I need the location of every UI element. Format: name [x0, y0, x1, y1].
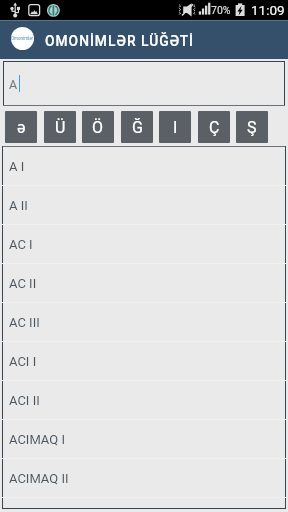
button[interactable]: Ö — [82, 111, 114, 143]
staticText: A II — [9, 198, 28, 213]
button[interactable]: ACI II — [2, 381, 286, 419]
button[interactable]: ACI I — [2, 342, 286, 380]
button[interactable]: A II — [2, 186, 286, 224]
staticText: 70% — [211, 4, 231, 16]
button[interactable]: Ş — [236, 111, 268, 143]
button[interactable]: ACIMAQ I — [2, 420, 286, 458]
other: App icon — [11, 27, 34, 50]
button[interactable]: ACIMAQ II — [2, 459, 286, 497]
staticText: AC III — [9, 315, 40, 330]
button[interactable]: A I — [2, 147, 286, 185]
button[interactable]: Ç — [198, 111, 230, 143]
button[interactable]: AC III — [2, 303, 286, 341]
button[interactable]: Ğ — [121, 111, 153, 143]
staticText: Ğ — [132, 118, 143, 137]
button[interactable]: A — [3, 61, 285, 106]
button[interactable]: AC I — [2, 225, 286, 263]
staticText: ACIMAQ I — [9, 432, 65, 447]
staticText: A I — [9, 159, 25, 174]
staticText: OMONİMLƏR LÜĞƏTİ — [45, 33, 194, 49]
button[interactable]: ə — [5, 111, 37, 143]
staticText: Ö — [92, 118, 104, 137]
button[interactable]: App icon — [0, 20, 288, 59]
staticText: Ç — [209, 118, 220, 137]
staticText: A — [9, 77, 18, 92]
staticText: ə — [17, 118, 26, 137]
staticText: AC II — [9, 276, 37, 291]
button[interactable]: Ü — [44, 111, 76, 143]
staticText: I — [173, 118, 178, 137]
staticText: ACI II — [9, 393, 40, 408]
staticText: 11:09 — [251, 2, 285, 18]
staticText: Ş — [247, 118, 257, 137]
staticText: ACIMAQ II — [9, 471, 69, 486]
button[interactable]: I — [159, 111, 191, 143]
staticText: Ü — [55, 118, 66, 137]
staticText: Omonimlər — [11, 36, 34, 41]
staticText: AC I — [9, 237, 33, 252]
staticText: ACI I — [9, 354, 37, 369]
button[interactable]: AC II — [2, 264, 286, 302]
